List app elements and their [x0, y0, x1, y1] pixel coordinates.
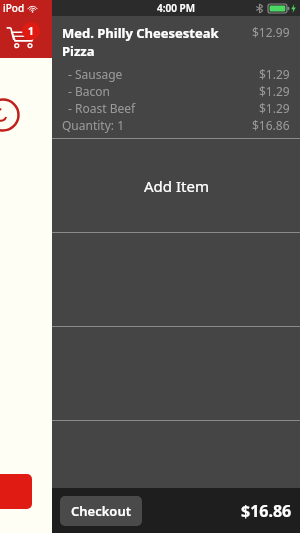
staticText: - Bacon: [68, 83, 110, 99]
staticText: $16.86: [241, 500, 292, 522]
button[interactable]: Add Item: [52, 139, 300, 232]
button[interactable]: Med. Philly Cheesesteak Pizza: [52, 16, 300, 138]
staticText: $1.29: [259, 83, 290, 99]
staticText: - Roast Beef: [68, 100, 136, 116]
staticText: $1.29: [259, 100, 290, 116]
staticText: Quantity: 1: [62, 117, 125, 133]
staticText: Med. Philly Cheesesteak Pizza: [62, 24, 246, 60]
staticText: $12.99: [252, 24, 290, 40]
staticText: $16.86: [252, 117, 290, 133]
staticText: Checkout: [71, 502, 131, 520]
staticText: 1: [28, 24, 34, 38]
button[interactable]: Action: [0, 474, 32, 509]
staticText: Add Item: [144, 176, 209, 196]
staticText: - Sausage: [68, 66, 123, 82]
staticText: $1.29: [259, 66, 290, 82]
button[interactable]: Checkout: [60, 496, 142, 526]
button[interactable]: Cart: [6, 22, 46, 52]
staticText: 4:00 PM: [157, 1, 195, 15]
staticText: iPod: [3, 1, 25, 15]
